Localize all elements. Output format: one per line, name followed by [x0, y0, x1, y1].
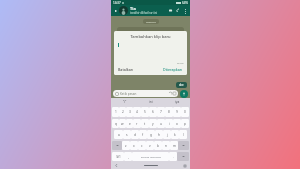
- button[interactable]: 7: [157, 107, 165, 117]
- button[interactable]: z: [122, 141, 130, 150]
- button[interactable]: .: [169, 152, 177, 161]
- button[interactable]: v: [146, 141, 154, 150]
- button[interactable]: 9: [173, 107, 181, 117]
- staticText: Tia: [130, 6, 136, 11]
- staticText: x: [133, 144, 135, 148]
- button[interactable]: Send voice message: [180, 90, 188, 98]
- button[interactable]: 0/150: [114, 42, 187, 65]
- button[interactable]: o: [173, 119, 181, 128]
- staticText: t: [144, 122, 146, 126]
- button[interactable]: !#1: [112, 152, 124, 161]
- button[interactable]: Back: [113, 8, 119, 14]
- button[interactable]: d: [131, 130, 139, 139]
- staticText: 4: [136, 110, 138, 114]
- staticText: u: [160, 122, 162, 126]
- staticText: 0: [184, 110, 186, 114]
- button[interactable]: Diterapkan: [162, 66, 184, 73]
- staticText: iya: [175, 100, 180, 104]
- button[interactable]: 0: [181, 107, 189, 117]
- button[interactable]: 4: [133, 107, 141, 117]
- button[interactable]: n: [162, 141, 170, 150]
- button[interactable]: s: [123, 130, 131, 139]
- staticText: y: [152, 122, 154, 126]
- button[interactable]: h: [155, 130, 163, 139]
- staticText: 14:37: [113, 1, 121, 5]
- button[interactable]: Shift: [112, 141, 122, 150]
- staticText: h: [158, 133, 160, 137]
- staticText: c: [141, 144, 143, 148]
- staticText: m: [173, 144, 176, 148]
- button[interactable]: i: [165, 119, 173, 128]
- staticText: n: [165, 144, 167, 148]
- staticText: g: [150, 133, 152, 137]
- button[interactable]: r: [133, 119, 141, 128]
- staticText: 8: [168, 110, 170, 114]
- button[interactable]: g: [147, 130, 155, 139]
- other: Attach: [169, 92, 172, 95]
- other: Emoji: [115, 92, 119, 96]
- staticText: k: [174, 133, 176, 137]
- staticText: Ketik pesan: [120, 92, 169, 96]
- staticText: 3: [129, 110, 131, 114]
- button[interactable]: Voice call: [175, 7, 182, 14]
- staticText: f: [142, 133, 144, 137]
- button[interactable]: a: [114, 130, 123, 139]
- button[interactable]: More options: [182, 8, 188, 14]
- button[interactable]: u: [157, 119, 165, 128]
- button[interactable]: m: [170, 141, 178, 150]
- button[interactable]: Video call: [168, 7, 175, 14]
- button[interactable]: Batalkan: [117, 66, 135, 73]
- button[interactable]: q: [112, 119, 119, 128]
- button[interactable]: p: [181, 119, 189, 128]
- button[interactable]: 8: [165, 107, 173, 117]
- button[interactable]: 2: [119, 107, 126, 117]
- staticText: 0/150: [177, 61, 184, 64]
- staticText: HARI INI: [146, 20, 156, 23]
- button[interactable]: 5: [141, 107, 149, 117]
- button[interactable]: Backspace: [178, 141, 189, 150]
- staticText: 5: [144, 110, 146, 114]
- button[interactable]: f: [139, 130, 147, 139]
- button[interactable]: Enter: [177, 152, 189, 161]
- staticText: 7: [160, 110, 162, 114]
- staticText: o: [176, 122, 178, 126]
- staticText: i: [169, 122, 170, 126]
- button[interactable]: ini: [138, 98, 164, 106]
- staticText: 9: [176, 110, 178, 114]
- button[interactable]: ,: [124, 152, 132, 161]
- staticText: j: [167, 133, 168, 137]
- staticText: 1: [115, 110, 117, 114]
- staticText: 64%: [182, 1, 188, 5]
- button[interactable]: l: [179, 130, 187, 139]
- button[interactable]: 6: [149, 107, 157, 117]
- staticText: Diterapkan: [163, 67, 183, 72]
- button[interactable]: w: [119, 119, 126, 128]
- staticText: s: [126, 133, 128, 137]
- button[interactable]: Bahasa Indonesia: [132, 152, 169, 161]
- staticText: e: [129, 122, 131, 126]
- button[interactable]: y: [149, 119, 157, 128]
- staticText: b: [157, 144, 159, 148]
- button[interactable]: 3: [126, 107, 133, 117]
- staticText: terakhir dilihat hari ini: [130, 11, 157, 15]
- staticText: d: [134, 133, 136, 137]
- button[interactable]: iya: [164, 98, 190, 106]
- button[interactable]: e: [126, 119, 133, 128]
- staticText: !#1: [116, 155, 121, 159]
- staticText: Bahasa Indonesia: [141, 155, 161, 158]
- button[interactable]: "i": [111, 98, 138, 106]
- button[interactable]: Home: [144, 165, 158, 166]
- staticText: r: [136, 122, 138, 126]
- button[interactable]: Tia: [130, 6, 168, 15]
- button[interactable]: t: [141, 119, 149, 128]
- button[interactable]: j: [163, 130, 171, 139]
- button[interactable]: k: [171, 130, 179, 139]
- button[interactable]: x: [130, 141, 138, 150]
- button[interactable]: Back: [115, 164, 118, 167]
- button[interactable]: Contact photo: [119, 6, 128, 15]
- button[interactable]: Emoji: [113, 90, 178, 97]
- button[interactable]: b: [154, 141, 162, 150]
- button[interactable]: 1: [112, 107, 119, 117]
- button[interactable]: c: [138, 141, 146, 150]
